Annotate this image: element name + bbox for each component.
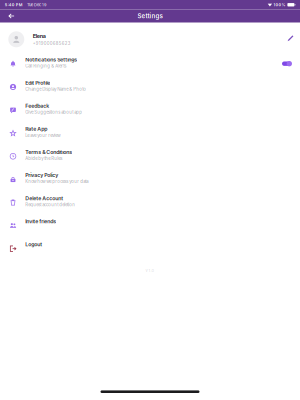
staticText: Leave your review [25,133,60,138]
button[interactable]: Notification alerts toggle [282,59,292,66]
staticText: Change Display Name & Photo [25,87,86,92]
staticText: Privacy Policy [25,172,58,178]
staticText: Rate App [25,126,47,132]
button[interactable]: Back [5,9,18,22]
staticText: Know how we process your data [25,179,88,184]
staticText: Delete Account [25,195,63,201]
staticText: Invite friends [25,218,56,224]
staticText: 5:40 PM [5,2,23,7]
staticText: v 1.0 [145,268,154,273]
button[interactable]: Logout [0,236,300,259]
button[interactable]: Feedback [0,97,300,121]
button[interactable]: Privacy Policy [0,167,300,190]
button[interactable]: Notifications Settings [0,51,300,74]
staticText: Feedback [25,103,49,109]
staticText: Elena [33,33,46,39]
button[interactable]: Invite friends [0,213,300,236]
staticText: Abide by the Rules [25,156,62,161]
button[interactable]: Elena [0,31,300,47]
staticText: Notifications Settings [25,56,77,63]
staticText: Edit Profile [25,80,50,86]
staticText: Request account deletion [25,202,75,207]
staticText: Call Ringing & Alerts [25,63,66,69]
staticText: Terms & Conditions [25,149,72,155]
button[interactable]: Terms & Conditions [0,144,300,167]
staticText: +919000685623 [33,41,71,46]
button[interactable]: Rate App [0,121,300,144]
staticText: Logout [25,241,42,248]
staticText: Settings [137,12,162,20]
staticText: Give Suggestions about app [25,110,82,115]
staticText: 100% [274,2,286,7]
button[interactable]: Edit Profile [0,74,300,97]
button[interactable]: Delete Account [0,190,300,213]
staticText: Tue Dec 19 [27,2,46,7]
